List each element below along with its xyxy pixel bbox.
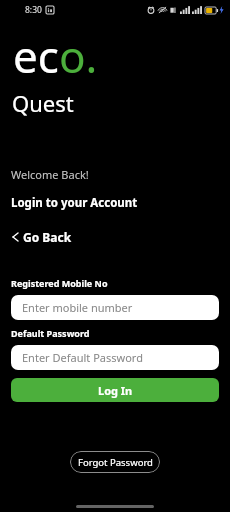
button[interactable]: Go Back <box>8 226 75 248</box>
staticText: Enter mobile number <box>22 300 133 315</box>
button[interactable]: Log In <box>11 378 219 402</box>
button[interactable]: Forgot Password <box>70 451 160 473</box>
staticText: Login to your Account <box>11 195 138 211</box>
button[interactable]: Enter Default Password <box>11 345 219 370</box>
staticText: eco. <box>13 26 98 86</box>
staticText: Quest <box>12 88 74 118</box>
staticText: Enter Default Password <box>22 350 143 365</box>
button[interactable]: Enter mobile number <box>11 295 219 320</box>
staticText: Log In <box>98 383 133 398</box>
staticText: Registered Mobile No <box>11 277 108 289</box>
staticText: 8:30 <box>25 4 42 16</box>
staticText: Forgot Password <box>78 456 153 469</box>
staticText: Welcome Back! <box>11 167 89 182</box>
staticText: Default Password <box>11 327 90 339</box>
staticText: Go Back <box>23 229 72 245</box>
